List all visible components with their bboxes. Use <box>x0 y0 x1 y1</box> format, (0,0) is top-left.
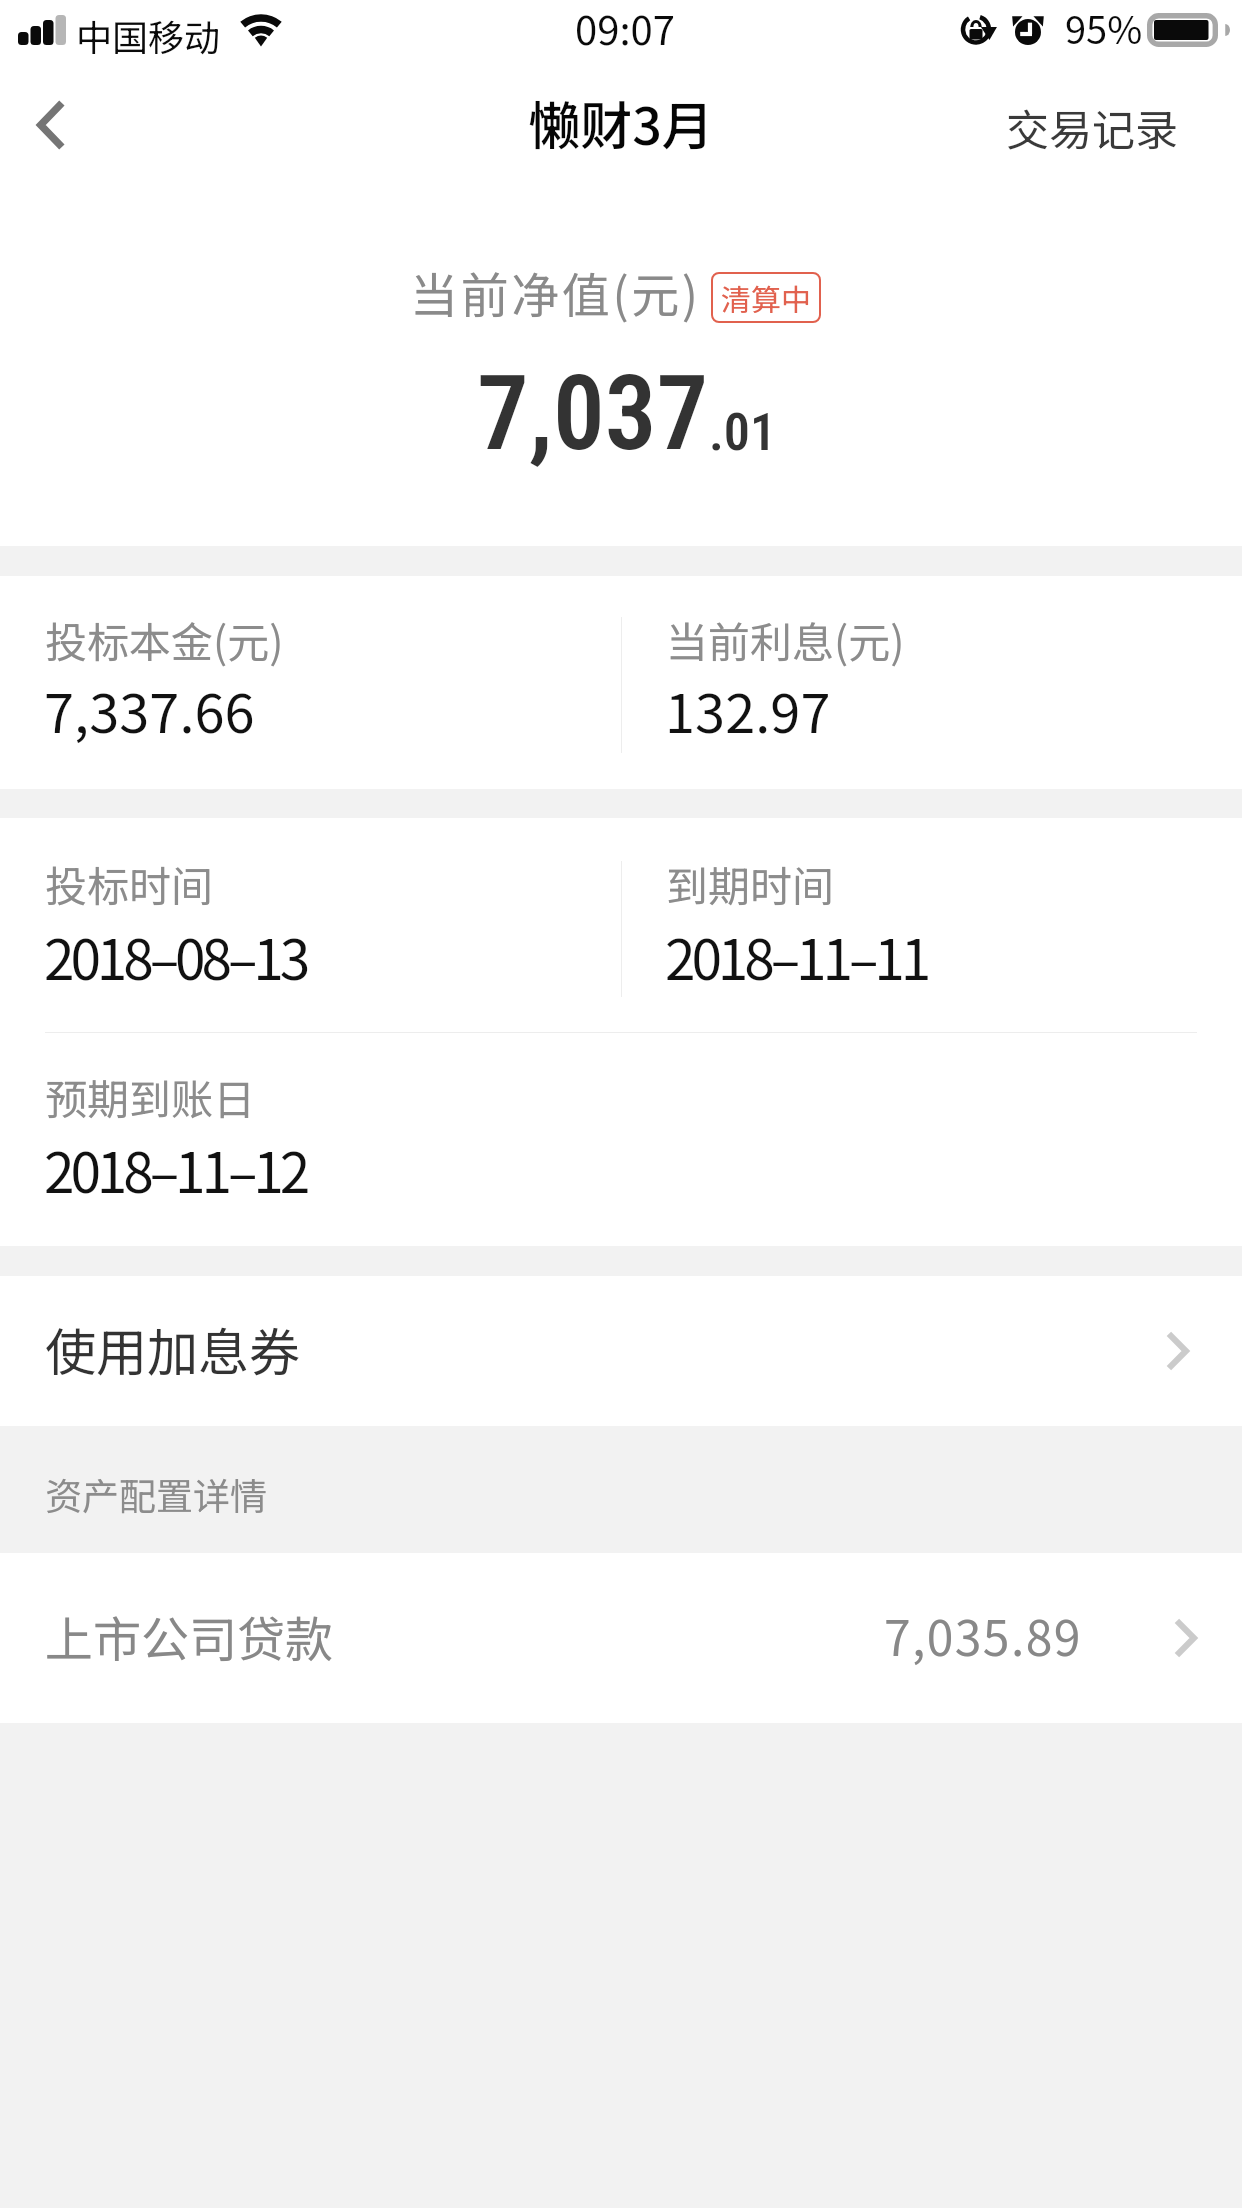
staticText: 95% <box>1065 0 1143 55</box>
staticText: 到期时间 <box>666 853 835 914</box>
staticText: 7,337.66 <box>44 670 255 748</box>
staticText: 投标时间 <box>45 853 214 914</box>
staticText: 懒财3月 <box>528 85 714 160</box>
staticText: 09:07 <box>575 0 675 57</box>
button[interactable]: 使用加息券 <box>0 1276 1242 1426</box>
staticText: 中国移动 <box>76 9 221 61</box>
staticText: 2018–08–13 <box>44 916 307 996</box>
staticText: 上市公司贷款 <box>45 1601 334 1671</box>
staticText: 预期到账日 <box>45 1066 256 1127</box>
staticText: .01 <box>709 402 777 463</box>
staticText: 7,037 <box>477 353 709 474</box>
staticText: 7,035.89 <box>884 1600 1082 1670</box>
staticText: 当前利息(元) <box>666 609 905 670</box>
staticText: 使用加息券 <box>45 1312 301 1386</box>
staticText: 2018–11–12 <box>44 1129 307 1209</box>
staticText: 资产配置详情 <box>45 1467 267 1521</box>
button[interactable]: 上市公司贷款 <box>0 1553 1242 1723</box>
staticText: 投标本金(元) <box>45 609 284 670</box>
staticText: 交易记录 <box>1006 96 1178 158</box>
staticText: 清算中 <box>721 276 811 319</box>
button[interactable]: Back <box>0 70 105 180</box>
staticText: 当前净值(元) <box>410 257 701 327</box>
staticText: 2018–11–11 <box>665 916 928 996</box>
staticText: 132.97 <box>665 670 831 748</box>
button[interactable]: 交易记录 <box>974 78 1242 176</box>
